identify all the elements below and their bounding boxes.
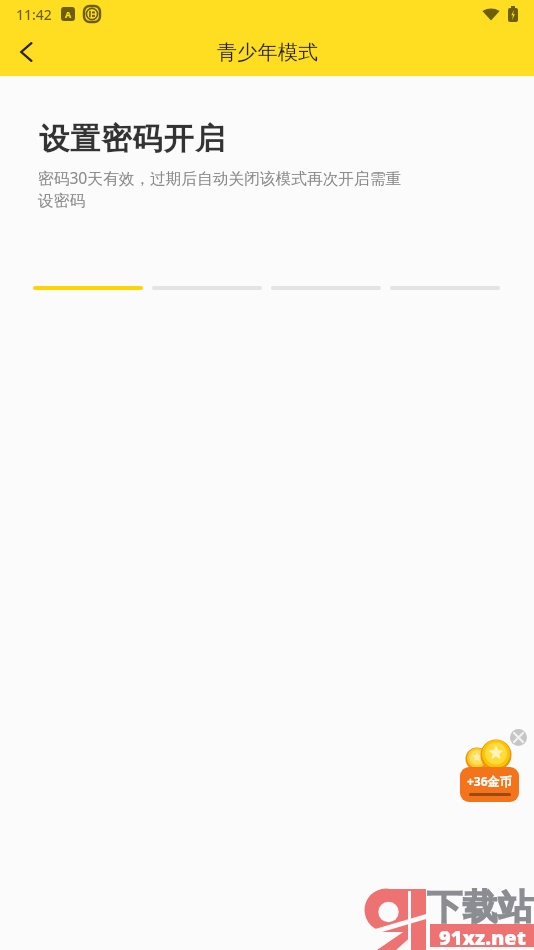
staticText: 青少年模式 bbox=[217, 40, 318, 65]
button[interactable]: Coin reward, +36 coins bbox=[460, 735, 520, 803]
staticText: 11:42 bbox=[16, 5, 52, 24]
staticText: 下载站 bbox=[427, 885, 534, 929]
button[interactable]: Close bbox=[510, 729, 527, 746]
staticText: 设置密码开启 bbox=[39, 120, 227, 158]
button[interactable]: Back bbox=[3, 28, 51, 76]
staticText: A bbox=[65, 8, 72, 20]
staticText: 密码30天有效，过期后自动关闭该模式再次开启需重设密码 bbox=[38, 167, 406, 210]
button[interactable]: Password entry bbox=[33, 268, 500, 290]
staticText: 91xz.net bbox=[439, 924, 526, 947]
staticText: +36金币 bbox=[467, 773, 512, 789]
